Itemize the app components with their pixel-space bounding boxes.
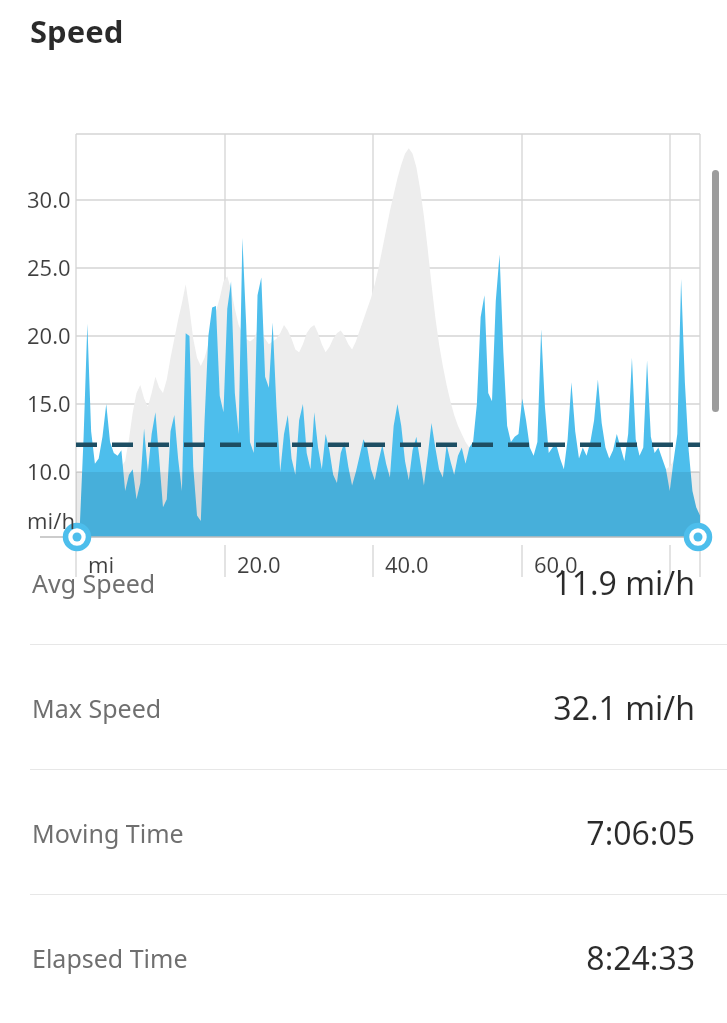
staticText: Avg Speed — [32, 566, 156, 600]
staticText: mi/h — [27, 505, 76, 535]
staticText: Moving Time — [32, 816, 184, 850]
staticText: 10.0 — [27, 456, 71, 486]
staticText: Speed — [30, 10, 124, 52]
staticText: 8:24:33 — [586, 936, 695, 980]
button[interactable]: Speed over distance chart — [0, 52, 727, 520]
button[interactable]: Elapsed Time — [0, 895, 727, 1020]
staticText: 32.1 mi/h — [553, 686, 695, 730]
staticText: 11.9 mi/h — [553, 561, 695, 605]
staticText: 25.0 — [27, 252, 71, 282]
button[interactable]: Moving Time — [0, 770, 727, 895]
staticText: 7:06:05 — [586, 811, 695, 855]
staticText: 15.0 — [27, 388, 71, 418]
staticText: 60.0 — [534, 549, 578, 579]
staticText: mi — [88, 549, 115, 579]
staticText: 40.0 — [385, 549, 429, 579]
button[interactable]: Max Speed — [0, 645, 727, 770]
staticText: 20.0 — [27, 320, 71, 350]
staticText: Max Speed — [32, 691, 162, 725]
staticText: 20.0 — [237, 549, 281, 579]
staticText: 30.0 — [27, 184, 71, 214]
button[interactable]: Avg Speed — [0, 520, 727, 645]
staticText: Elapsed Time — [32, 941, 188, 975]
